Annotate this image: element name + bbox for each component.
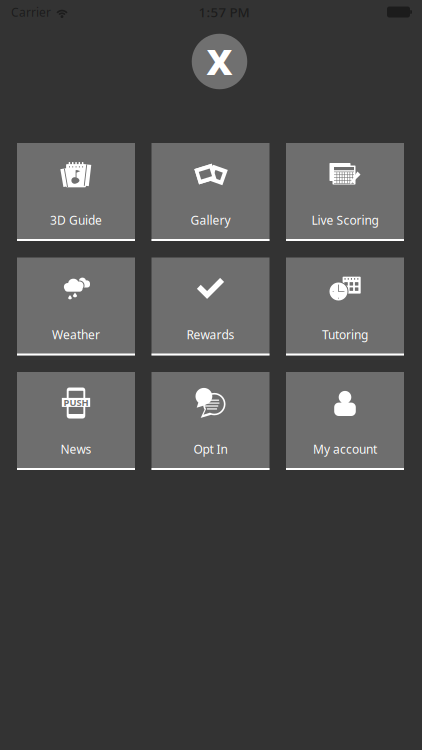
- staticText: Tutoring: [322, 326, 368, 342]
- staticText: Rewards: [186, 326, 234, 342]
- staticText: My account: [313, 441, 377, 457]
- staticText: X: [206, 37, 232, 85]
- staticText: Opt In: [193, 441, 227, 457]
- button[interactable]: Gallery: [151, 143, 269, 241]
- button[interactable]: Weather: [17, 257, 135, 355]
- button[interactable]: 3D Guide: [17, 143, 135, 241]
- button[interactable]: Opt In: [151, 372, 269, 470]
- staticText: Weather: [52, 326, 100, 342]
- staticText: Gallery: [190, 212, 230, 228]
- staticText: Live Scoring: [311, 212, 378, 228]
- staticText: Carrier: [11, 4, 51, 20]
- staticText: 3D Guide: [50, 212, 102, 228]
- button[interactable]: My account: [286, 372, 404, 470]
- staticText: PUSH: [63, 396, 88, 409]
- button[interactable]: Tutoring: [286, 257, 404, 355]
- staticText: News: [60, 441, 91, 457]
- button[interactable]: Rewards: [151, 257, 269, 355]
- staticText: 1:57 PM: [198, 3, 249, 21]
- button[interactable]: PUSH: [17, 372, 135, 470]
- button[interactable]: Live Scoring: [286, 143, 404, 241]
